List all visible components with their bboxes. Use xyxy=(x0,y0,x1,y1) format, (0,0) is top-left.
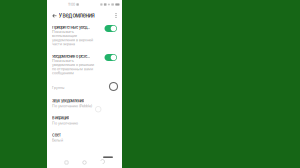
button[interactable]: Свет xyxy=(52,133,117,142)
staticText: Белый xyxy=(52,138,63,142)
staticText: Показывать xyxy=(52,29,74,34)
button[interactable]: Recent apps xyxy=(61,157,72,168)
staticText: сообщениям xyxy=(52,71,74,75)
button[interactable]: Back xyxy=(97,157,108,168)
staticText: всплывающие xyxy=(52,34,77,38)
button[interactable]: Звук уведомления xyxy=(52,98,117,108)
button[interactable]: Back xyxy=(50,9,58,21)
staticText: По умолчанию (Pebble) xyxy=(52,104,92,108)
staticText: По умолчанию xyxy=(52,121,78,125)
staticText: Вибрация xyxy=(52,116,69,120)
staticText: Свет xyxy=(52,133,61,137)
button[interactable]: Вибрация xyxy=(52,116,117,125)
button[interactable]: More options xyxy=(111,9,120,21)
staticText: Группы xyxy=(52,86,64,90)
staticText: Показывать xyxy=(52,58,74,63)
button[interactable]: Уведомления о резе... xyxy=(52,54,117,75)
staticText: уведомления о решении xyxy=(52,63,94,67)
button[interactable]: Приоритетные увед... xyxy=(52,25,117,46)
staticText: уведомления в верхней xyxy=(52,38,93,42)
staticText: по отправленным вами xyxy=(52,67,93,71)
staticText: Уведомления о резе... xyxy=(52,54,90,59)
staticText: 11:00 xyxy=(68,2,75,7)
staticText: Уведомления xyxy=(58,12,94,19)
staticText: части экрана xyxy=(52,42,75,46)
button[interactable]: Home xyxy=(79,157,90,168)
staticText: Звук уведомления xyxy=(52,98,84,103)
staticText: Приоритетные увед... xyxy=(52,25,90,30)
